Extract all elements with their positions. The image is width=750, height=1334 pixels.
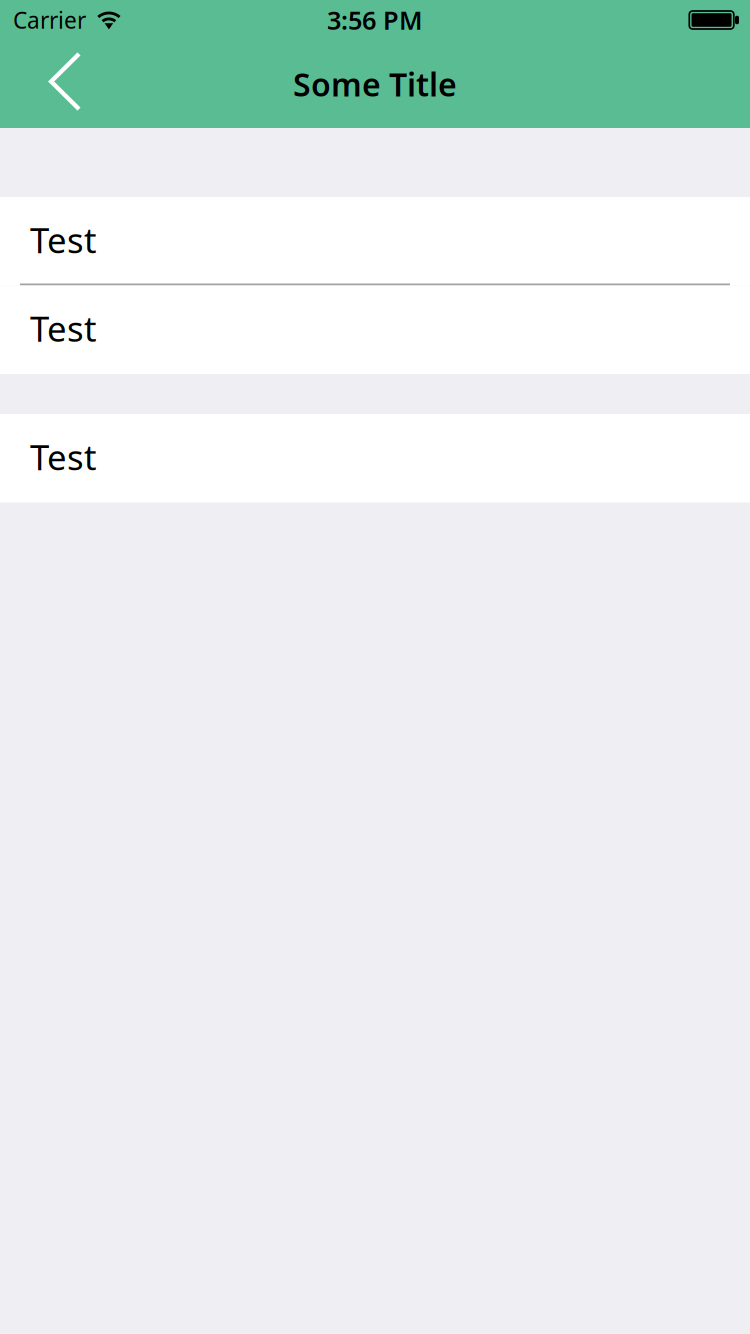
button[interactable]: Test (0, 285, 750, 374)
staticText: Test (30, 434, 97, 480)
button[interactable]: Back (0, 40, 112, 128)
staticText: Test (30, 305, 97, 351)
button[interactable]: Test (0, 414, 750, 502)
staticText: Carrier (13, 5, 86, 35)
staticText: 3:56 PM (327, 3, 423, 37)
staticText: Some Title (293, 63, 457, 105)
button[interactable]: Test (0, 197, 750, 285)
staticText: Test (30, 217, 97, 263)
